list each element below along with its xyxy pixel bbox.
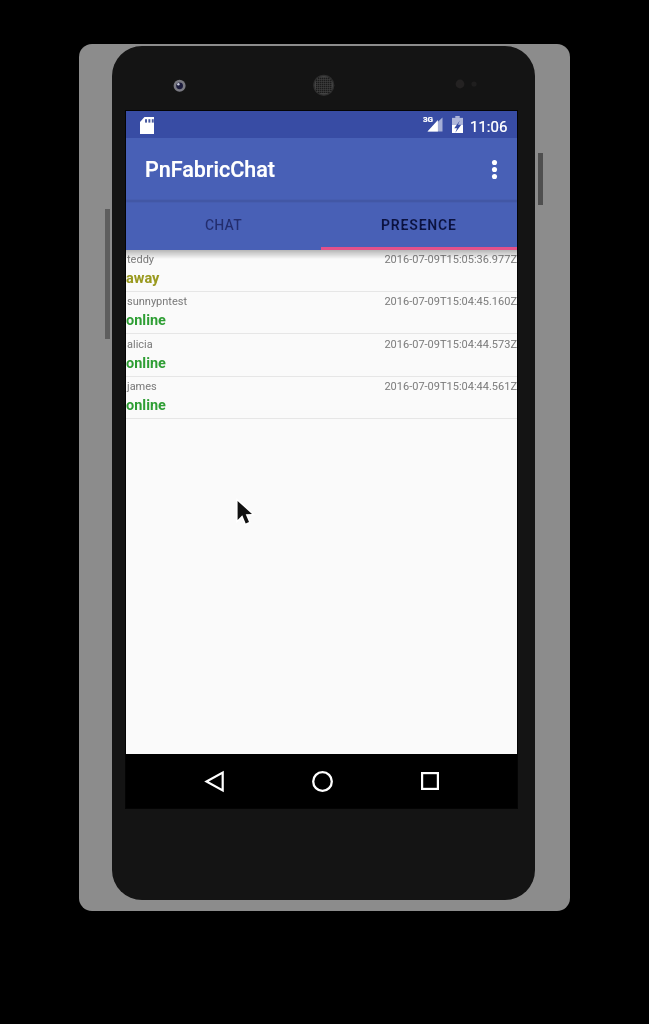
staticText: alicia bbox=[127, 338, 153, 351]
button[interactable]: Recent apps bbox=[406, 754, 454, 808]
button[interactable]: Back bbox=[190, 754, 238, 808]
button[interactable]: PRESENCE bbox=[321, 199, 517, 250]
staticText: 11:06 bbox=[470, 118, 508, 136]
staticText: online bbox=[126, 397, 166, 414]
staticText: CHAT bbox=[205, 217, 242, 233]
staticText: 2016-07-09T15:05:36.977Z bbox=[384, 253, 517, 266]
staticText: online bbox=[126, 355, 166, 372]
button[interactable]: alicia bbox=[126, 335, 517, 377]
staticText: PRESENCE bbox=[381, 217, 457, 233]
staticText: online bbox=[126, 312, 166, 329]
button[interactable]: teddy bbox=[126, 250, 517, 292]
button[interactable]: More options bbox=[471, 138, 517, 199]
staticText: sunnypntest bbox=[127, 295, 188, 308]
staticText: 3G bbox=[423, 115, 433, 124]
staticText: james bbox=[127, 380, 157, 393]
staticText: 2016-07-09T15:04:44.561Z bbox=[384, 380, 517, 393]
staticText: 2016-07-09T15:04:45.160Z bbox=[384, 295, 517, 308]
button[interactable]: Home bbox=[298, 754, 346, 808]
button[interactable]: CHAT bbox=[126, 199, 321, 250]
button[interactable]: sunnypntest bbox=[126, 292, 517, 334]
staticText: away bbox=[126, 270, 160, 287]
staticText: teddy bbox=[127, 253, 155, 266]
button[interactable]: james bbox=[126, 377, 517, 419]
staticText: 2016-07-09T15:04:44.573Z bbox=[384, 338, 517, 351]
staticText: PnFabricChat bbox=[145, 157, 275, 182]
